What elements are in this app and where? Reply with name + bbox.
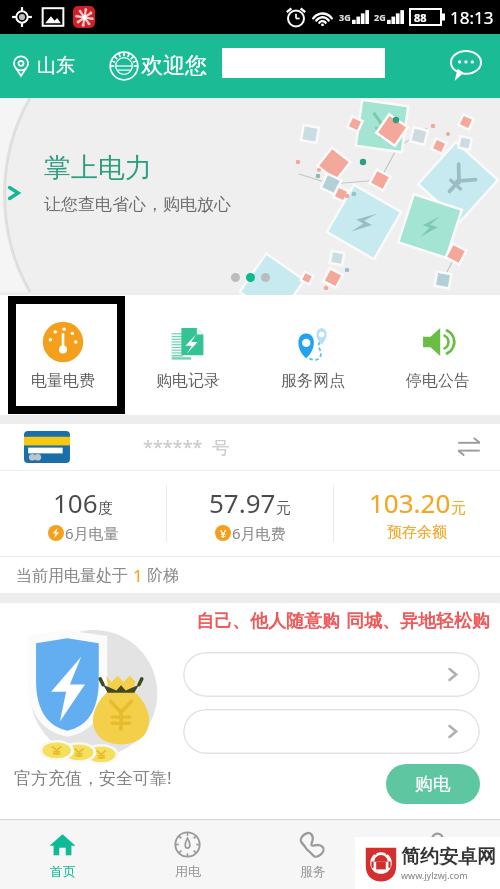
staticText: 6月电量 (65, 523, 119, 543)
button[interactable]: Switch account (454, 432, 484, 462)
staticText: 当前用电量处于 (16, 564, 133, 586)
staticText: 阶梯 (143, 564, 180, 586)
staticText: ¥ (220, 526, 227, 541)
button[interactable]: 服务 (250, 820, 375, 889)
staticText: 6月电费 (232, 523, 286, 543)
button[interactable]: 山东 (6, 46, 79, 86)
staticText: 首页 (50, 863, 76, 879)
staticText: 同城、异地轻松购 (346, 610, 490, 633)
staticText: 预存余额 (387, 523, 447, 542)
staticText: 让您查电省心，购电放心 (44, 194, 231, 215)
staticText: 用电 (175, 863, 201, 879)
staticText: 购电记录 (156, 371, 220, 391)
staticText: 服务网点 (281, 371, 345, 391)
staticText: 官方充值，安全可靠! (14, 766, 172, 789)
staticText: 购电 (415, 773, 451, 796)
button[interactable]: 103.20 (334, 471, 500, 556)
button[interactable]: 57.97 (167, 471, 333, 556)
staticText: 掌上电力 (44, 151, 152, 185)
button[interactable] (183, 652, 480, 697)
staticText: ****** 号 (143, 435, 230, 460)
staticText: 1 (133, 564, 143, 587)
staticText: 电量电费 (31, 371, 95, 391)
staticText: 元 (451, 499, 466, 518)
button[interactable]: 购电记录 (125, 295, 250, 415)
button[interactable]: 电量电费 (0, 295, 125, 415)
staticText: 3G (339, 11, 351, 23)
staticText: 山东 (37, 54, 75, 78)
staticText: 停电公告 (406, 371, 470, 391)
staticText: 57.97 (209, 485, 276, 520)
staticText: 度 (98, 499, 113, 518)
staticText: 我的 (425, 863, 451, 879)
staticText: 18:13 (450, 6, 494, 29)
staticText: 服务 (300, 863, 326, 879)
staticText: 欢迎您 (141, 52, 207, 80)
button[interactable]: 首页 (0, 820, 125, 889)
staticText: 自己、他人随意购 (196, 610, 340, 633)
staticText: 106 (53, 485, 98, 520)
staticText: www.jylzwj.com (401, 869, 468, 881)
button[interactable]: 用电 (125, 820, 250, 889)
staticText: 2G (374, 11, 386, 23)
button[interactable]: Messages (446, 46, 486, 86)
staticText: 简约安卓网 (401, 845, 496, 869)
staticText: 88 (414, 10, 427, 25)
staticText: 103.20 (369, 485, 451, 520)
button[interactable] (183, 709, 480, 754)
staticText: 元 (276, 499, 291, 518)
button[interactable]: ****** 号 (0, 424, 500, 470)
button[interactable]: 购电 (386, 764, 480, 804)
button[interactable]: 停电公告 (375, 295, 500, 415)
button[interactable]: 我的 (375, 820, 500, 889)
button[interactable]: 106 (0, 471, 166, 556)
button[interactable]: 服务网点 (250, 295, 375, 415)
